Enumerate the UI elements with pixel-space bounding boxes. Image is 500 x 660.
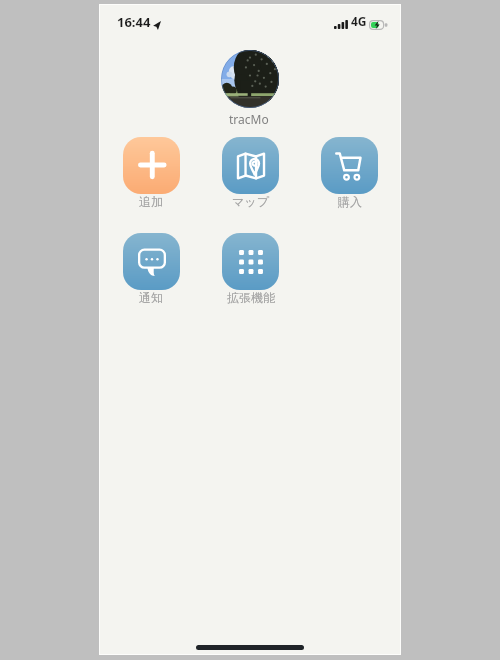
staticText: 通知 [139, 290, 163, 305]
button[interactable]: Map [201, 137, 300, 209]
other: Shop [321, 137, 378, 194]
other: Extensions [222, 233, 279, 290]
staticText: マップ [232, 194, 269, 209]
staticText: 購入 [338, 194, 362, 209]
staticText: 4G [351, 13, 367, 29]
staticText: 追加 [139, 194, 163, 209]
button[interactable]: Add [101, 137, 201, 209]
other: Notifications [123, 233, 180, 290]
other: Map [222, 137, 279, 194]
button[interactable]: Profile photo [221, 50, 279, 108]
staticText: 16:44 [117, 13, 151, 31]
button[interactable]: Shop [300, 137, 399, 209]
staticText: tracMo [229, 111, 269, 127]
button[interactable]: Notifications [101, 233, 201, 305]
other: Add [123, 137, 180, 194]
button[interactable]: Extensions [201, 233, 300, 305]
staticText: 拡張機能 [227, 290, 275, 305]
